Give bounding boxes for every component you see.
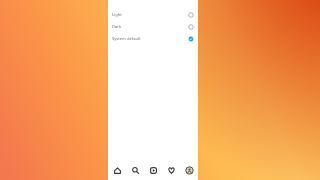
- button[interactable]: System default: [108, 33, 198, 45]
- button[interactable]: Dark: [108, 21, 198, 33]
- button[interactable]: Likes: [162, 160, 180, 180]
- staticText: System default: [112, 36, 141, 42]
- button[interactable]: Profile: [180, 160, 198, 180]
- button[interactable]: Reels: [144, 160, 162, 180]
- button[interactable]: Light: [108, 9, 198, 21]
- staticText: Dark: [112, 24, 122, 30]
- button[interactable]: Home: [108, 160, 126, 180]
- staticText: Light: [112, 12, 122, 18]
- button[interactable]: Search: [126, 160, 144, 180]
